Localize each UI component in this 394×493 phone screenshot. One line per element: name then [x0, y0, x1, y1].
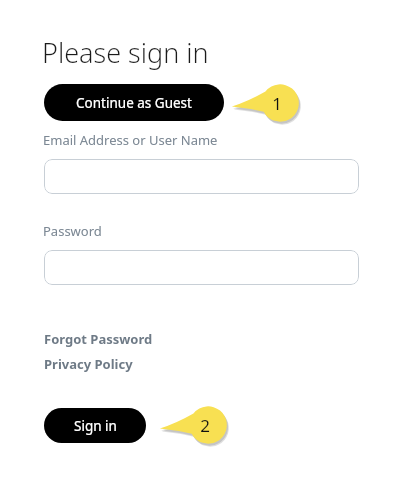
staticText: Privacy Policy: [44, 355, 133, 373]
button[interactable]: Sign in: [44, 408, 146, 443]
staticText: 1: [272, 92, 282, 115]
staticText: 2: [200, 414, 210, 437]
staticText: Please sign in: [42, 34, 209, 71]
button[interactable]: Email Address or User Name input: [44, 159, 359, 194]
button[interactable]: Forgot Password: [44, 329, 153, 349]
staticText: Password: [43, 222, 102, 240]
button[interactable]: Password input: [44, 250, 359, 285]
staticText: Email Address or User Name: [43, 131, 218, 149]
staticText: Forgot Password: [44, 330, 153, 348]
staticText: Sign in: [74, 417, 117, 435]
button[interactable]: Privacy Policy: [44, 354, 133, 374]
staticText: Continue as Guest: [76, 94, 192, 112]
button[interactable]: Continue as Guest: [44, 84, 224, 121]
